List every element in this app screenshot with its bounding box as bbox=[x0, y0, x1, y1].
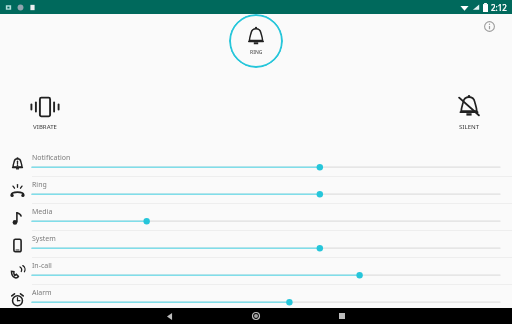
button[interactable]: Info bbox=[478, 15, 500, 37]
staticText: In-call bbox=[32, 261, 52, 271]
button[interactable]: VIBRATE bbox=[14, 92, 76, 133]
button[interactable]: RING bbox=[229, 14, 283, 68]
staticText: Media bbox=[32, 207, 53, 217]
button[interactable]: System bbox=[0, 231, 512, 258]
button[interactable]: Alarm bbox=[0, 285, 512, 312]
staticText: RING bbox=[250, 49, 263, 56]
staticText: Notification bbox=[32, 153, 71, 163]
staticText: System bbox=[32, 234, 56, 244]
button[interactable]: Recents bbox=[316, 308, 368, 324]
button[interactable]: Home bbox=[230, 308, 282, 324]
staticText: Alarm bbox=[32, 288, 52, 298]
staticText: VIBRATE bbox=[33, 123, 57, 131]
button[interactable]: Back bbox=[144, 308, 196, 324]
staticText: 2:12 bbox=[491, 2, 507, 13]
button[interactable]: SILENT bbox=[438, 92, 500, 133]
button[interactable]: In-call bbox=[0, 258, 512, 285]
staticText: SILENT bbox=[459, 123, 479, 131]
button[interactable]: Notification bbox=[0, 150, 512, 177]
staticText: Ring bbox=[32, 180, 47, 190]
button[interactable]: Media bbox=[0, 204, 512, 231]
button[interactable]: Ring bbox=[0, 177, 512, 204]
